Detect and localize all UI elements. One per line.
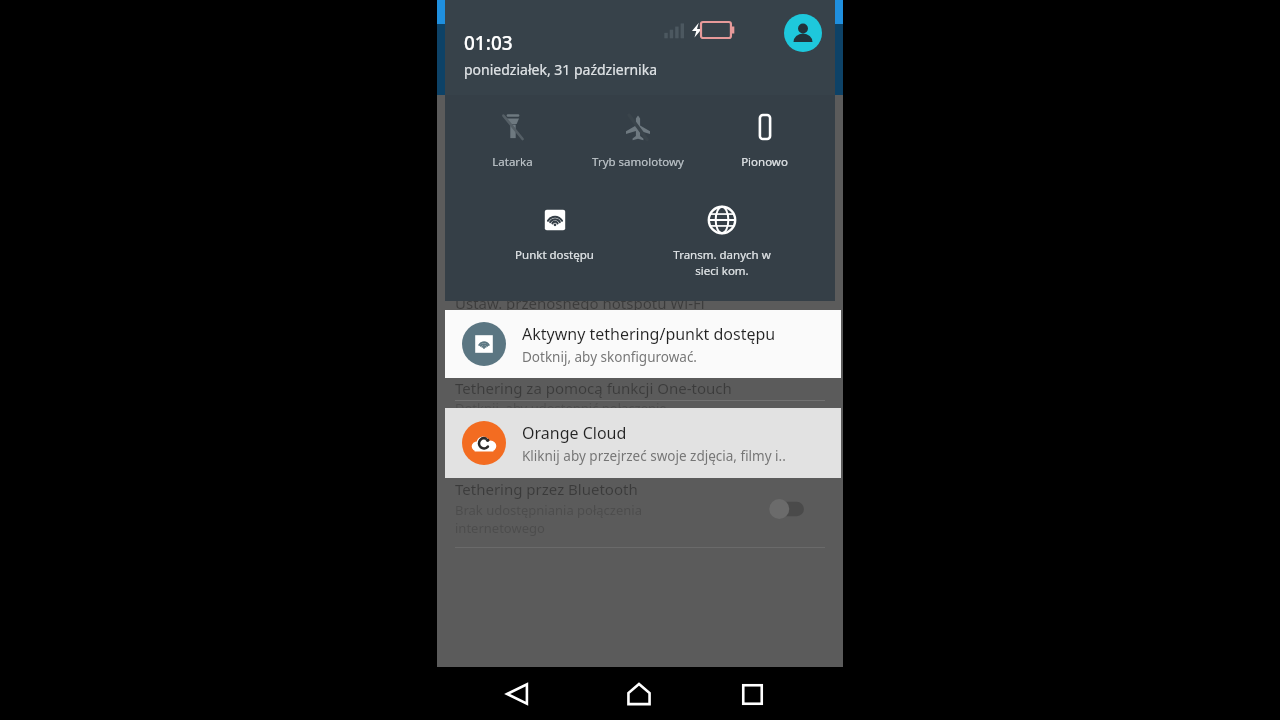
button[interactable]: Orange Cloud <box>445 408 841 478</box>
button[interactable]: Back <box>500 677 534 711</box>
staticText: Tethering za pomocą funkcji One-touch <box>455 378 732 398</box>
staticText: Tethering przez Bluetooth <box>455 479 638 499</box>
staticText: Pionowo <box>741 154 788 170</box>
staticText: Transm. danych w sieci kom. <box>673 247 771 278</box>
staticText: Aktywny tethering/punkt dostępu <box>522 323 776 345</box>
staticText: Kliknij aby przejrzeć swoje zdjęcia, fil… <box>522 447 786 465</box>
staticText: Tryb samolotowy <box>592 154 684 170</box>
staticText: Orange Cloud <box>522 422 627 444</box>
button[interactable]: User profile <box>784 14 822 52</box>
staticText: poniedziałek, 31 października <box>464 60 658 79</box>
staticText: 01:03 <box>464 30 513 56</box>
button[interactable]: Punkt dostępu <box>494 196 614 286</box>
staticText: Ustaw. przenośnego hotspotu Wi-Fi <box>455 293 705 313</box>
button[interactable]: Aktywny tethering/punkt dostępu <box>445 310 841 378</box>
button[interactable]: Recent apps <box>735 677 769 711</box>
staticText: Latarka <box>492 154 533 170</box>
button[interactable]: Latarka <box>452 103 572 193</box>
button[interactable]: Tryb samolotowy <box>578 103 698 193</box>
button[interactable]: Home <box>622 677 656 711</box>
button[interactable]: Transm. danych w sieci kom. <box>662 196 782 286</box>
staticText: Punkt dostępu <box>515 247 594 263</box>
button[interactable]: Tethering przez Bluetooth <box>437 478 843 546</box>
staticText: Dotknij, aby udostępnić połączenie <box>455 399 667 417</box>
staticText: Brak udostępniania połączenia internetow… <box>455 501 642 537</box>
staticText: Dotknij, aby skonfigurować. <box>522 348 697 366</box>
button[interactable]: Pionowo <box>704 103 824 193</box>
